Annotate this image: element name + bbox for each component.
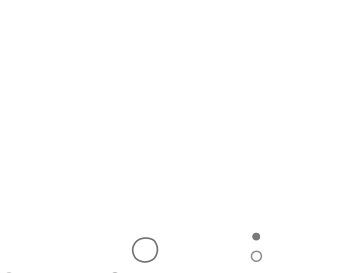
button[interactable]: Record xyxy=(0,0,361,273)
button[interactable]: Selected page xyxy=(0,0,361,273)
button[interactable]: Unselected page xyxy=(0,0,361,273)
